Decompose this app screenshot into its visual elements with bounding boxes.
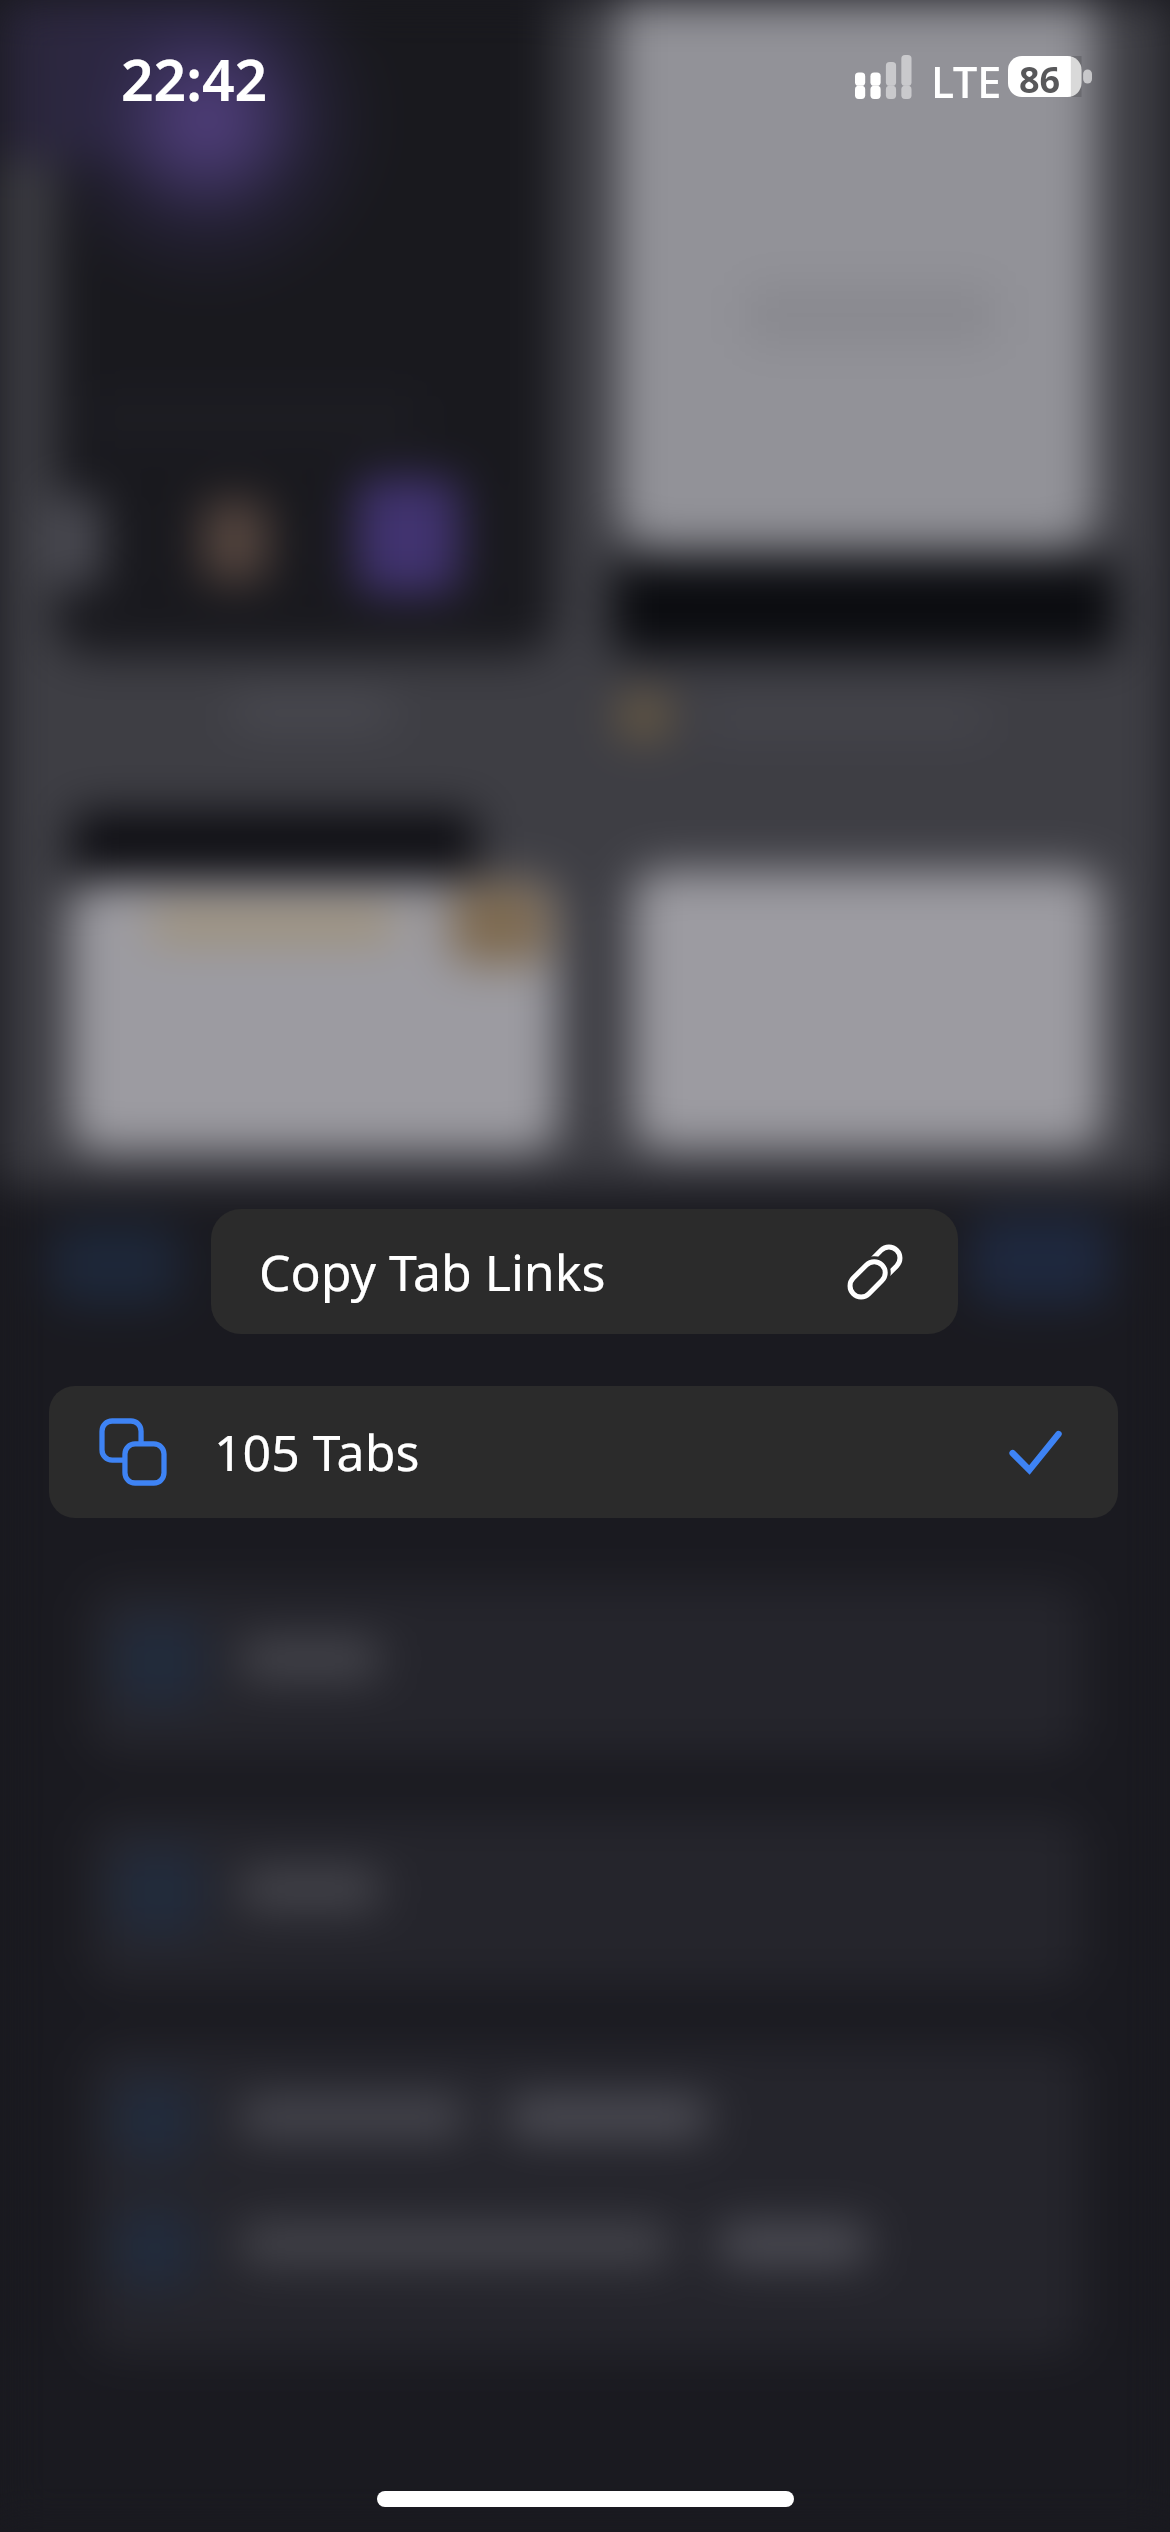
- other: Link: [843, 1240, 907, 1304]
- staticText: 86: [1019, 55, 1061, 96]
- staticText: Copy Tab Links: [259, 1238, 606, 1306]
- staticText: LTE: [931, 52, 1002, 111]
- other: Cellular signal strength: [855, 55, 914, 99]
- button[interactable]: Copy Tab Links: [211, 1209, 958, 1334]
- other: Battery 86 percent: [1008, 56, 1092, 97]
- staticText: 22:42: [121, 40, 268, 118]
- button[interactable]: 105 Tabs: [49, 1386, 1118, 1518]
- staticText: 105 Tabs: [214, 1418, 420, 1486]
